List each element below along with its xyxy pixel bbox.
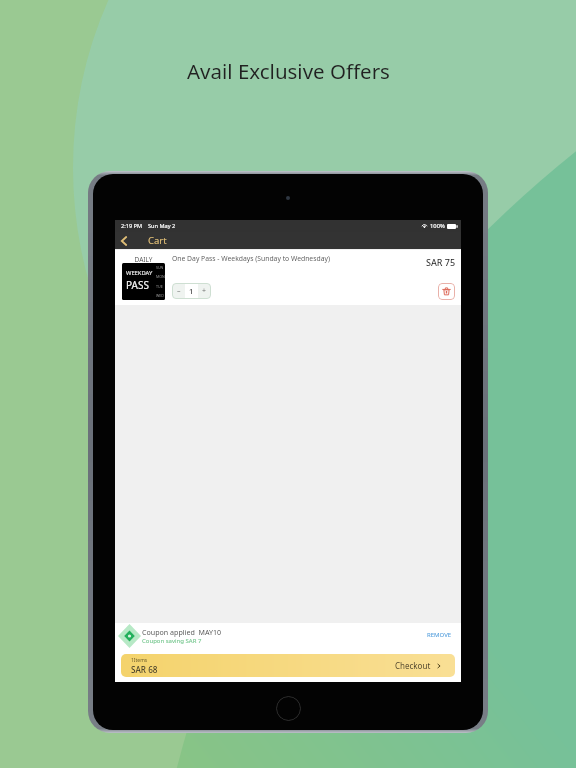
button[interactable]: REMOVE — [427, 631, 452, 639]
staticText: WEEKDAY — [126, 269, 153, 277]
staticText: WED — [156, 293, 164, 298]
button[interactable]: 1Items — [121, 654, 455, 677]
staticText: Avail Exclusive Offers — [187, 57, 390, 85]
staticText: Coupon applied MAY10 — [142, 627, 222, 637]
button[interactable]: Increase quantity — [198, 283, 211, 299]
staticText: SAR 75 — [426, 256, 456, 268]
staticText: DAILY — [122, 255, 165, 264]
staticText: Sun May 2 — [148, 222, 176, 230]
button[interactable]: Back — [116, 233, 131, 248]
staticText: TUE — [156, 284, 163, 289]
staticText: – — [177, 286, 181, 296]
staticText: + — [202, 286, 207, 296]
staticText: One Day Pass - Weekdays (Sunday to Wedne… — [172, 254, 330, 263]
staticText: Checkout — [395, 660, 431, 671]
staticText: REMOVE — [427, 631, 452, 639]
button[interactable]: DAILY — [115, 250, 461, 305]
staticText: SAR 68 — [131, 664, 158, 675]
button[interactable]: Decrease quantity — [172, 283, 185, 299]
staticText: 1Items — [131, 657, 148, 664]
staticText: 2:19 PM — [121, 222, 143, 230]
staticText: 100% — [430, 222, 445, 230]
staticText: 1 — [189, 286, 194, 296]
staticText: MON — [156, 274, 165, 279]
button[interactable]: Delete item — [438, 283, 455, 300]
staticText: SUN — [156, 265, 164, 270]
staticText: Cart — [148, 234, 167, 247]
staticText: PASS — [126, 278, 149, 292]
staticText: Coupon saving SAR 7 — [142, 637, 202, 645]
